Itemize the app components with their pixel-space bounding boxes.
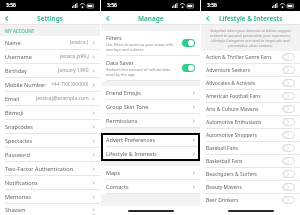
button[interactable]: Toggle off <box>282 53 295 61</box>
staticText: Advert Preferences <box>106 136 191 143</box>
staticText: Manage <box>138 14 164 23</box>
button[interactable]: Toggle off <box>282 92 295 100</box>
button[interactable]: American Football Fans <box>201 90 300 102</box>
staticText: Settings <box>37 14 63 23</box>
staticText: Lifestyle & Interests <box>106 150 191 157</box>
staticText: January 1990 <box>58 67 89 74</box>
staticText: Beachgoers & Surfers <box>206 171 282 178</box>
staticText: Action & Thriller Genre Fans <box>206 54 282 61</box>
button[interactable]: Basketball Fans <box>201 155 300 167</box>
button[interactable]: Email <box>0 92 100 105</box>
button[interactable]: Toggle off <box>282 196 295 204</box>
staticText: Jessica J <box>70 39 89 46</box>
staticText: Shazam <box>5 206 91 213</box>
button[interactable]: Toggle off <box>282 183 295 191</box>
staticText: 3:56 <box>207 2 217 9</box>
button[interactable]: Automotive Shoppers <box>201 129 300 141</box>
staticText: Password <box>5 151 91 158</box>
button[interactable]: Contacts <box>101 180 200 193</box>
button[interactable]: Toggle off <box>282 66 295 74</box>
staticText: Email <box>5 95 36 102</box>
button[interactable]: Username <box>0 50 100 63</box>
staticText: Advocates & Activists <box>206 80 282 87</box>
button[interactable]: Name <box>0 36 100 49</box>
staticText: Spectacles <box>5 137 91 144</box>
staticText: Maps <box>106 169 191 176</box>
button[interactable]: Bitmoji <box>0 106 100 119</box>
staticText: Memories <box>5 193 91 200</box>
staticText: Beer Drinkers <box>206 197 282 204</box>
button[interactable]: Shazam <box>0 204 100 215</box>
staticText: Birthday <box>5 67 58 74</box>
staticText: jessica.js99.j <box>60 53 89 60</box>
staticText: Two-Factor Authentication <box>5 165 91 172</box>
staticText: Contacts <box>106 183 191 190</box>
button[interactable]: Arts & Culture Mavens <box>201 103 300 115</box>
button[interactable]: Toggle on <box>182 39 195 47</box>
button[interactable]: Notifications <box>0 176 100 189</box>
staticText: Data Saver <box>106 59 134 66</box>
button[interactable]: Back <box>0 11 14 25</box>
button[interactable]: Action & Thriller Genre Fans <box>201 51 300 63</box>
button[interactable]: Back <box>201 11 215 25</box>
staticText: Lifestyle & Interests <box>219 14 283 23</box>
button[interactable]: Memories <box>0 190 100 203</box>
button[interactable]: Data Saver <box>101 56 200 80</box>
button[interactable]: Beer Drinkers <box>201 194 300 206</box>
staticText: Mobile Number <box>5 81 51 88</box>
button[interactable]: Maps <box>101 166 200 179</box>
button[interactable]: Toggle off <box>282 144 295 152</box>
button[interactable]: Snapcodes <box>0 120 100 133</box>
staticText: Baseball Fans <box>206 145 282 152</box>
staticText: jessicaj@example.com <box>36 95 89 102</box>
staticText: +44 7XX XXXXXX <box>51 81 89 88</box>
staticText: Snapchat infers your interests to better… <box>209 28 292 48</box>
button[interactable]: Mobile Number <box>0 78 100 91</box>
staticText: Reduces the amount of cellular data used… <box>106 67 179 77</box>
staticText: Bitmoji <box>5 109 91 116</box>
staticText: Notifications <box>5 179 91 186</box>
staticText: Username <box>5 53 60 60</box>
staticText: Adventure Seekers <box>206 67 282 74</box>
staticText: Automotive Enthusiasts <box>206 119 282 126</box>
staticText: Filters <box>106 34 122 41</box>
staticText: 3:56 <box>6 2 16 9</box>
button[interactable]: Beachgoers & Surfers <box>201 168 300 180</box>
button[interactable]: Birthday <box>0 64 100 77</box>
button[interactable]: Back <box>101 11 115 25</box>
button[interactable]: Permissions <box>101 114 200 127</box>
button[interactable]: Password <box>0 148 100 161</box>
button[interactable]: Toggle on <box>182 64 195 72</box>
staticText: Beauty Mavens <box>206 184 282 191</box>
staticText: Arts & Culture Mavens <box>206 106 282 113</box>
button[interactable]: Toggle off <box>282 157 295 165</box>
button[interactable]: Advocates & Activists <box>201 77 300 89</box>
staticText: Basketball Fans <box>206 158 282 165</box>
button[interactable]: Baseball Fans <box>201 142 300 154</box>
staticText: Friend Emojis <box>106 89 191 96</box>
button[interactable]: Toggle off <box>282 105 295 113</box>
button[interactable]: Filters <box>101 31 200 55</box>
staticText: Group Skin Tone <box>106 103 191 110</box>
button[interactable]: Adventure Seekers <box>201 64 300 76</box>
button[interactable]: Toggle off <box>282 118 295 126</box>
button[interactable]: Beauty Mavens <box>201 181 300 193</box>
staticText: 3:56 <box>107 2 117 9</box>
staticText: Use filters to spice up your snaps with … <box>106 42 179 52</box>
button[interactable]: Advert Preferences <box>101 133 200 146</box>
button[interactable]: Automotive Enthusiasts <box>201 116 300 128</box>
button[interactable]: Spectacles <box>0 134 100 147</box>
button[interactable]: Group Skin Tone <box>101 100 200 113</box>
button[interactable]: Toggle off <box>282 170 295 178</box>
button[interactable]: Toggle off <box>282 79 295 87</box>
staticText: American Football Fans <box>206 93 282 100</box>
staticText: Automotive Shoppers <box>206 132 282 139</box>
button[interactable]: Lifestyle & Interests <box>101 147 200 160</box>
staticText: MY ACCOUNT <box>5 28 35 34</box>
button[interactable]: Two-Factor Authentication <box>0 162 100 175</box>
button[interactable]: Friend Emojis <box>101 86 200 99</box>
button[interactable]: Toggle off <box>282 131 295 139</box>
staticText: Name <box>5 39 70 46</box>
staticText: Permissions <box>106 117 191 124</box>
staticText: Snapcodes <box>5 123 91 130</box>
